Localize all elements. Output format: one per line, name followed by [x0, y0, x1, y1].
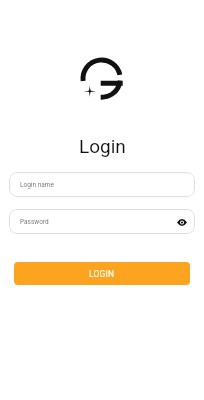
- staticText: LOGIN: [89, 269, 115, 279]
- staticText: Password: [20, 218, 49, 226]
- button[interactable]: LOGIN: [14, 262, 190, 285]
- staticText: Login: [79, 135, 126, 157]
- button[interactable]: Login name: [9, 172, 195, 197]
- staticText: Login name: [20, 181, 54, 189]
- button[interactable]: Show password: [176, 216, 188, 228]
- button[interactable]: Password: [9, 209, 195, 234]
